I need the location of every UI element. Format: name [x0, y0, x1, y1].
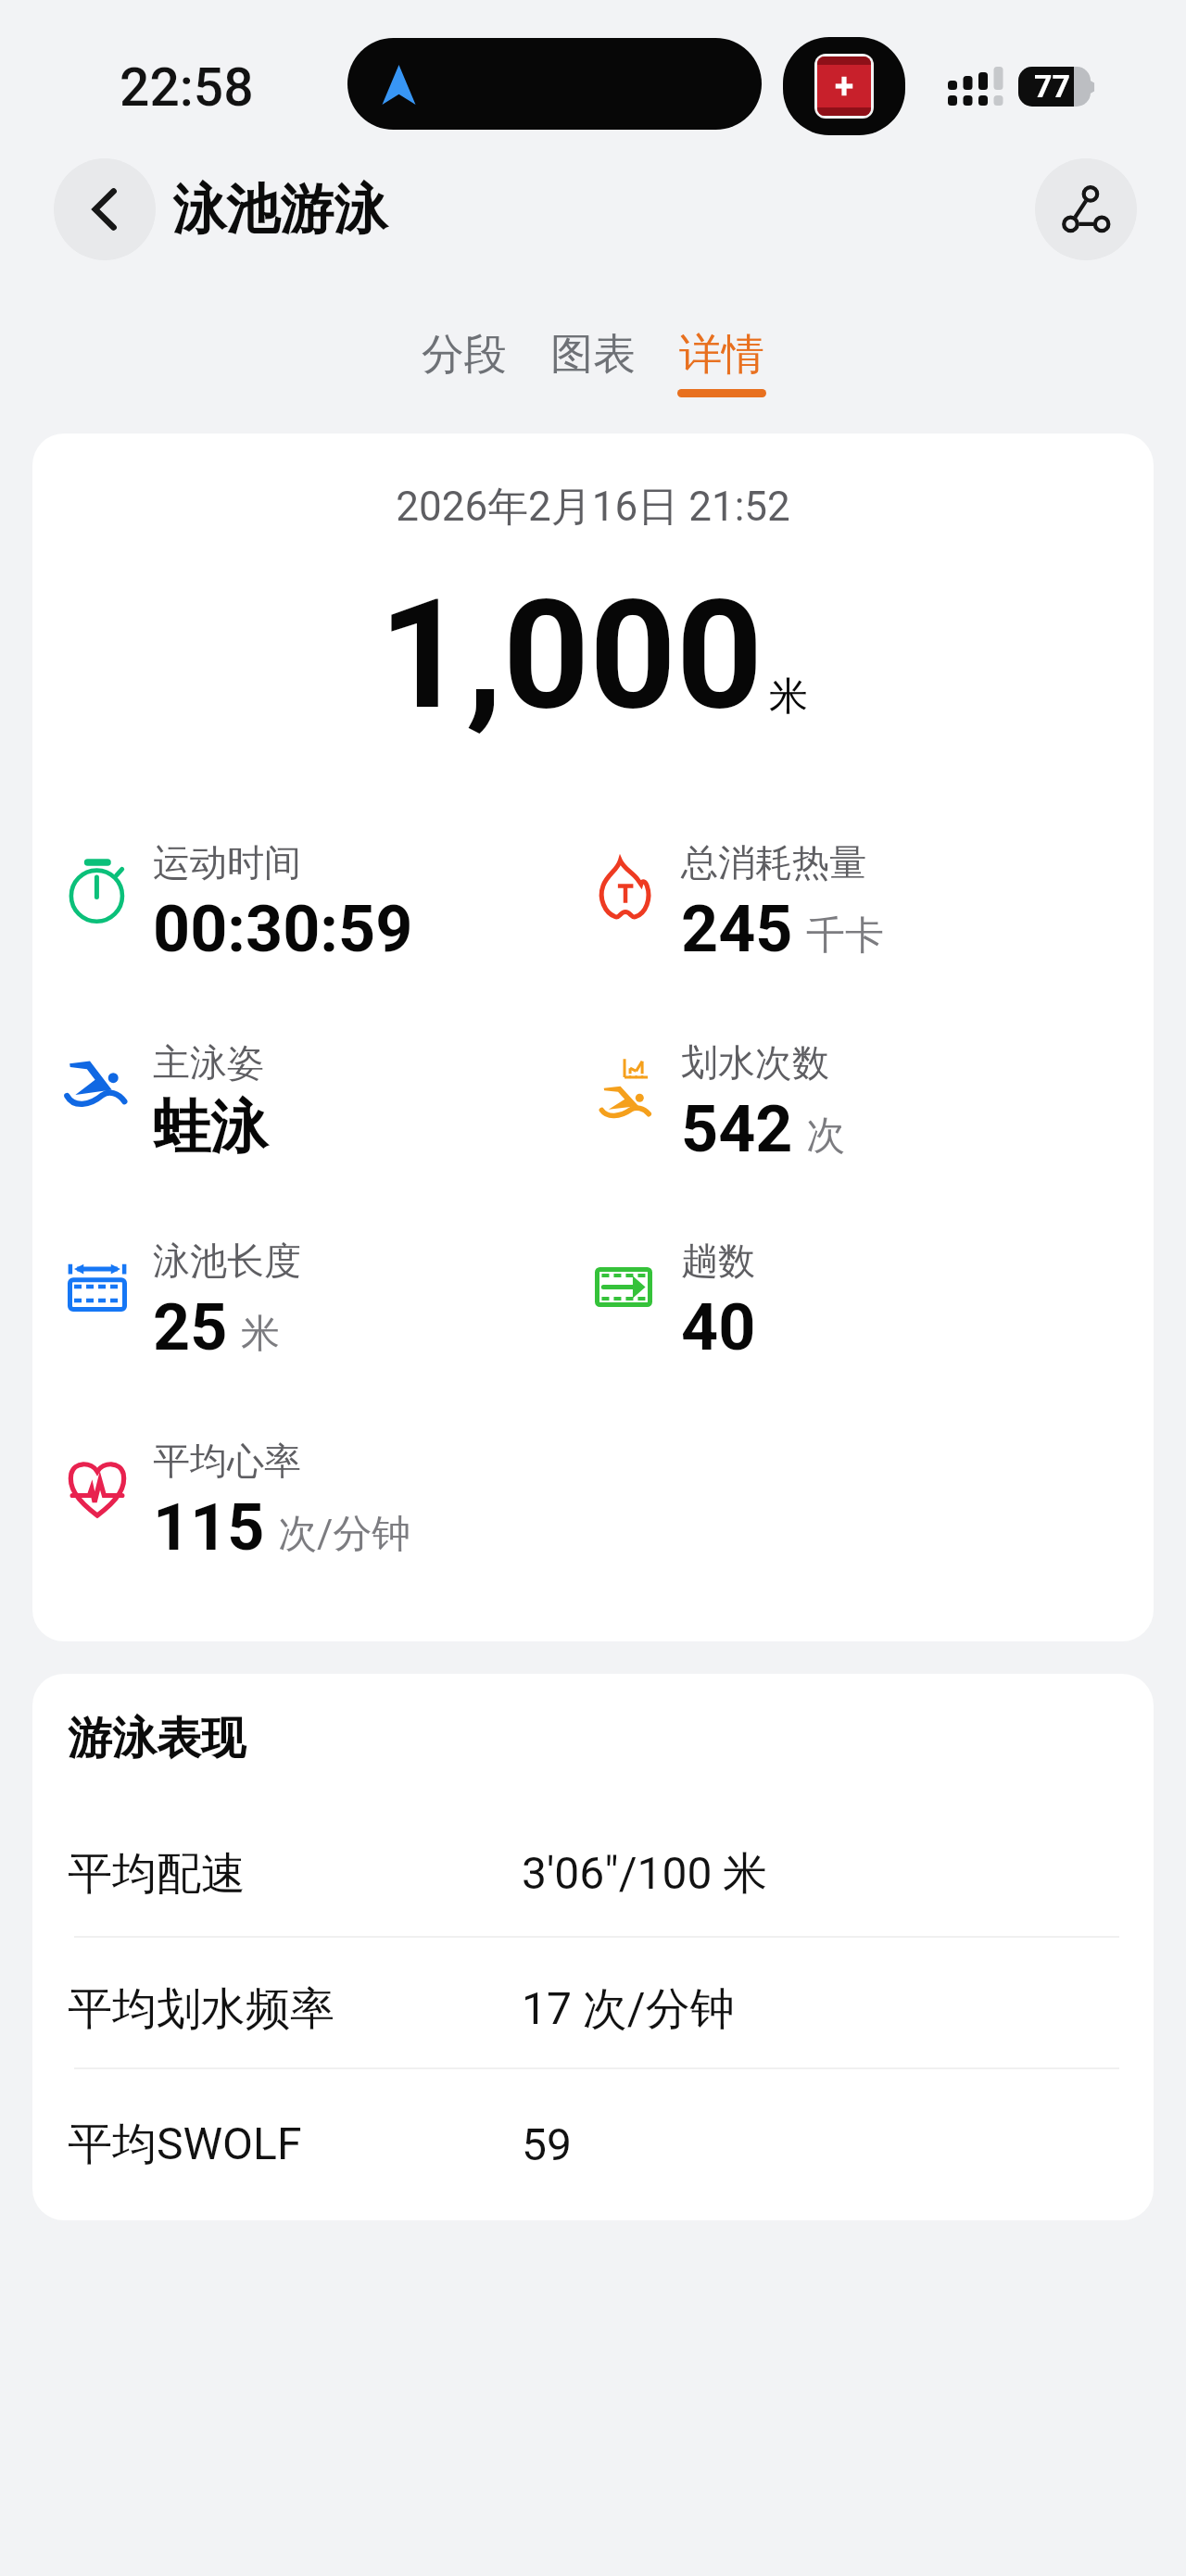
staticText: 主泳姿 — [153, 1039, 264, 1086]
staticText: 平均心率 — [153, 1438, 301, 1484]
staticText: 542 — [681, 1091, 793, 1167]
staticText: 图表 — [550, 328, 636, 382]
staticText: 17 次/分钟 — [522, 1981, 735, 2037]
button[interactable]: Back — [54, 158, 156, 260]
staticText: 泳池长度 — [153, 1238, 301, 1284]
staticText: 245 — [681, 891, 793, 967]
staticText: 游泳表现 — [68, 1711, 246, 1766]
staticText: 分段 — [422, 328, 507, 382]
staticText: 40 — [681, 1289, 756, 1365]
staticText: 1,000 — [379, 567, 763, 744]
staticText: 115 — [153, 1489, 265, 1565]
staticText: 59 — [522, 2118, 572, 2170]
staticText: 千卡 — [806, 911, 884, 961]
staticText: 2026年2月16日 21:52 — [32, 482, 1154, 533]
staticText: 总消耗热量 — [681, 839, 866, 886]
staticText: 次 — [806, 1112, 845, 1161]
button[interactable]: Share — [1035, 158, 1137, 260]
staticText: 25 — [153, 1289, 228, 1365]
staticText: 77 — [1034, 68, 1071, 105]
staticText: 平均配速 — [68, 1846, 522, 1902]
button[interactable]: 分段 — [399, 328, 529, 421]
staticText: 米 — [241, 1310, 280, 1359]
staticText: 泳池游泳 — [172, 176, 387, 244]
button[interactable]: 图表 — [528, 328, 658, 421]
staticText: 米 — [769, 672, 808, 722]
button[interactable]: 详情 — [657, 328, 787, 421]
staticText: 详情 — [679, 328, 764, 382]
staticText: 平均SWOLF — [68, 2117, 522, 2172]
staticText: 22:58 — [120, 57, 254, 119]
staticText: 运动时间 — [153, 839, 301, 886]
staticText: 划水次数 — [681, 1039, 829, 1086]
staticText: 3'06"/100 米 — [522, 1846, 768, 1902]
staticText: 平均划水频率 — [68, 1981, 522, 2037]
staticText: 次/分钟 — [278, 1510, 411, 1559]
staticText: 蛙泳 — [153, 1091, 268, 1163]
staticText: 趟数 — [681, 1238, 755, 1284]
staticText: 00:30:59 — [153, 891, 413, 967]
